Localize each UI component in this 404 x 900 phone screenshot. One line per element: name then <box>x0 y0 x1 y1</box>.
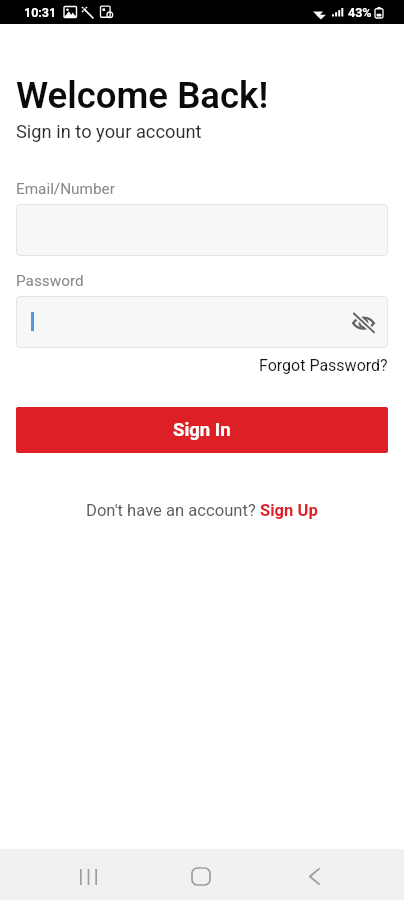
staticText: Password <box>16 272 84 290</box>
button[interactable]: Recent apps <box>58 851 118 900</box>
staticText: Sign In <box>173 419 231 441</box>
staticText: Don't have an account? <box>86 501 260 520</box>
staticText: Email/Number <box>16 180 115 198</box>
staticText: 10:31 <box>24 5 57 20</box>
button[interactable]: Show password <box>348 307 378 337</box>
button[interactable]: Forgot Password? <box>259 356 388 375</box>
button[interactable] <box>16 204 388 256</box>
staticText: Forgot Password? <box>259 356 388 375</box>
button[interactable]: Home <box>171 851 231 900</box>
button[interactable]: Show password <box>16 296 388 348</box>
button[interactable]: Back <box>284 851 344 900</box>
staticText: Sign Up <box>260 501 318 520</box>
staticText: Sign in to your account <box>16 121 202 142</box>
staticText: 43% <box>348 5 372 20</box>
staticText: Welcome Back! <box>16 74 269 117</box>
button[interactable]: Sign In <box>16 407 388 453</box>
button[interactable]: Sign Up <box>260 501 318 520</box>
